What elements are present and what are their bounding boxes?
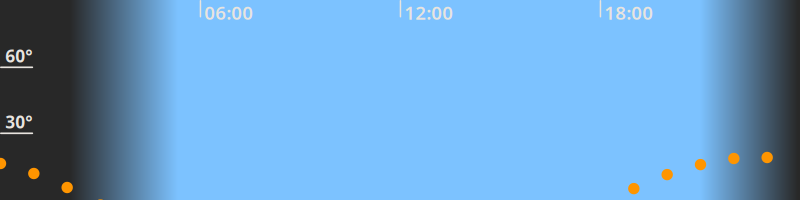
staticText: 12:00 (404, 0, 453, 25)
staticText: 30° (5, 110, 32, 133)
staticText: 18:00 (604, 0, 653, 25)
staticText: 60° (5, 44, 32, 67)
staticText: 06:00 (204, 0, 253, 25)
